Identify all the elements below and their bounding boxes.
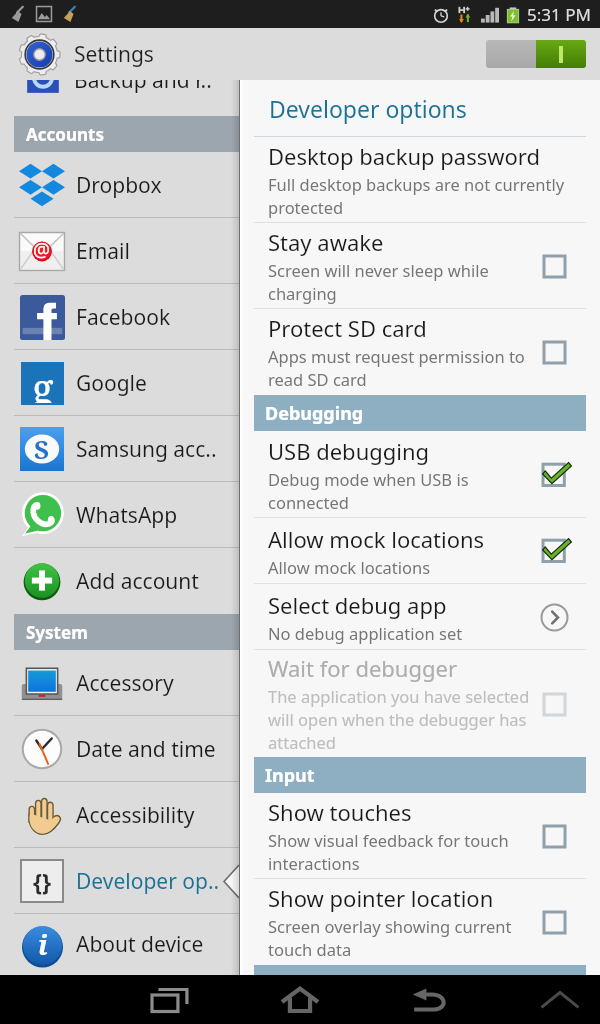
staticText: Backup and r.. bbox=[74, 80, 212, 95]
button[interactable]: i bbox=[0, 914, 239, 975]
button[interactable]: {} bbox=[0, 848, 239, 914]
button[interactable]: Facebook bbox=[0, 284, 239, 350]
staticText: 5:31 PM bbox=[527, 3, 591, 26]
button[interactable]: Back bbox=[387, 975, 473, 1024]
button[interactable]: Settings master switch, on bbox=[486, 40, 586, 68]
staticText: Developer options bbox=[269, 93, 467, 124]
button[interactable]: @ bbox=[0, 218, 239, 284]
button[interactable]: Show keyboard bbox=[517, 975, 600, 1024]
staticText: Facebook bbox=[76, 303, 171, 332]
staticText: Show touches bbox=[268, 797, 412, 827]
staticText: Screen overlay showing current touch dat… bbox=[268, 915, 540, 961]
staticText: The application you have selected will o… bbox=[268, 685, 540, 754]
staticText: Input bbox=[265, 763, 315, 788]
staticText: Accessory bbox=[76, 669, 174, 698]
staticText: System bbox=[26, 621, 88, 644]
staticText: Accounts bbox=[26, 123, 104, 146]
staticText: Email bbox=[76, 237, 130, 266]
staticText: Apps must request permission to read SD … bbox=[268, 345, 540, 391]
button[interactable]: Date and time bbox=[0, 716, 239, 782]
staticText: Desktop backup password bbox=[268, 141, 541, 171]
staticText: Protect SD card bbox=[268, 313, 427, 343]
button[interactable]: Allow mock locations bbox=[240, 518, 600, 584]
button[interactable]: S bbox=[0, 416, 239, 482]
staticText: Date and time bbox=[76, 735, 216, 764]
button[interactable]: Show pointer location bbox=[240, 879, 600, 965]
staticText: S bbox=[34, 431, 50, 466]
staticText: Developer op.. bbox=[76, 867, 220, 896]
button[interactable]: Desktop backup password bbox=[240, 137, 600, 223]
staticText: WhatsApp bbox=[76, 501, 178, 530]
staticText: Debugging bbox=[265, 401, 364, 426]
staticText: Samsung acc.. bbox=[76, 435, 217, 464]
staticText: Debug mode when USB is connected bbox=[268, 468, 540, 514]
staticText: Show pointer location bbox=[268, 883, 494, 913]
button[interactable]: Wait for debugger bbox=[240, 650, 600, 757]
button[interactable]: Show touches bbox=[240, 793, 600, 879]
button[interactable]: Accessory bbox=[0, 650, 239, 716]
staticText: Select debug app bbox=[268, 590, 447, 620]
button[interactable]: Select debug app bbox=[240, 584, 600, 650]
button[interactable]: Home bbox=[257, 975, 343, 1024]
staticText: g bbox=[32, 360, 54, 403]
button[interactable]: g bbox=[0, 350, 239, 416]
staticText: No debug application set bbox=[268, 622, 463, 644]
staticText: Allow mock locations bbox=[268, 524, 485, 554]
staticText: Show visual feedback for touch interacti… bbox=[268, 829, 540, 875]
button[interactable]: Stay awake bbox=[240, 223, 600, 309]
staticText: Stay awake bbox=[268, 227, 384, 257]
staticText: Wait for debugger bbox=[268, 653, 458, 683]
staticText: Full desktop backups are not currently p… bbox=[268, 173, 578, 219]
button[interactable]: Add account bbox=[0, 548, 239, 614]
button[interactable]: Dropbox bbox=[0, 152, 239, 218]
staticText: USB debugging bbox=[268, 436, 430, 466]
staticText: i bbox=[38, 926, 48, 963]
staticText: {} bbox=[33, 866, 52, 897]
staticText: Settings bbox=[74, 40, 154, 69]
staticText: Add account bbox=[76, 567, 199, 596]
staticText: Dropbox bbox=[76, 171, 162, 200]
staticText: Accessibility bbox=[76, 801, 195, 830]
button[interactable]: WhatsApp bbox=[0, 482, 239, 548]
button[interactable]: Accessibility bbox=[0, 782, 239, 848]
staticText: @ bbox=[33, 237, 51, 263]
staticText: Allow mock locations bbox=[268, 556, 431, 578]
button[interactable]: Recents bbox=[127, 975, 213, 1024]
button[interactable]: USB debugging bbox=[240, 431, 600, 518]
staticText: Google bbox=[76, 369, 147, 398]
staticText: Screen will never sleep while charging bbox=[268, 259, 540, 305]
button[interactable]: Protect SD card bbox=[240, 309, 600, 395]
staticText: About device bbox=[76, 930, 204, 959]
